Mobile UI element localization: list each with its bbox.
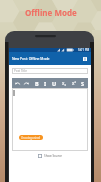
staticText: I [44,80,47,87]
button[interactable]: S [79,78,86,88]
staticText: S [81,80,85,87]
button[interactable]: Redo [23,78,30,88]
staticText: U [52,80,57,87]
staticText: x₂ [62,80,66,86]
button[interactable]: x² [70,78,77,88]
staticText: Post Title [14,69,27,73]
button[interactable]: I [42,78,49,88]
button[interactable]: Publish [78,52,91,65]
button[interactable]: Show Source [38,154,63,158]
button[interactable]: x₂ [60,78,67,88]
staticText: New Post: Offline Mode [12,56,78,61]
staticText: Offline Mode [25,7,77,18]
button[interactable]: Undo [14,78,21,88]
staticText: Show Source [44,154,63,158]
button[interactable]: Post Title [12,68,88,74]
staticText: x² [72,80,76,86]
button[interactable]: U [51,78,58,88]
button[interactable]: B [33,78,40,88]
button[interactable]: New Post: Offline Mode [9,52,91,65]
staticText: B [35,80,39,87]
button[interactable]: Uncategorized [21,135,41,140]
staticText: 5:01 PM [78,48,90,52]
staticText: Uncategorized [21,136,41,140]
